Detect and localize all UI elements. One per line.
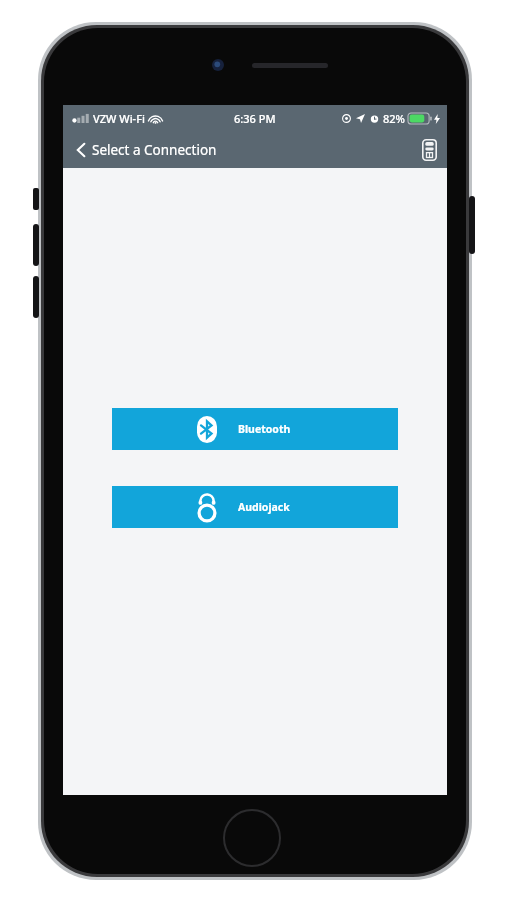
staticText: Bluetooth	[238, 422, 291, 436]
button[interactable]: Audiojack	[112, 486, 398, 528]
button[interactable]: Select a Connection	[63, 135, 227, 165]
staticText: Select a Connection	[92, 141, 217, 159]
staticText: Audiojack	[238, 500, 290, 514]
button[interactable]: Bluetooth	[112, 408, 398, 450]
staticText: 6:36 PM	[234, 111, 276, 126]
staticText: VZW Wi-Fi	[93, 111, 145, 126]
staticText: 82%	[383, 111, 405, 126]
button[interactable]: Device	[412, 134, 447, 166]
